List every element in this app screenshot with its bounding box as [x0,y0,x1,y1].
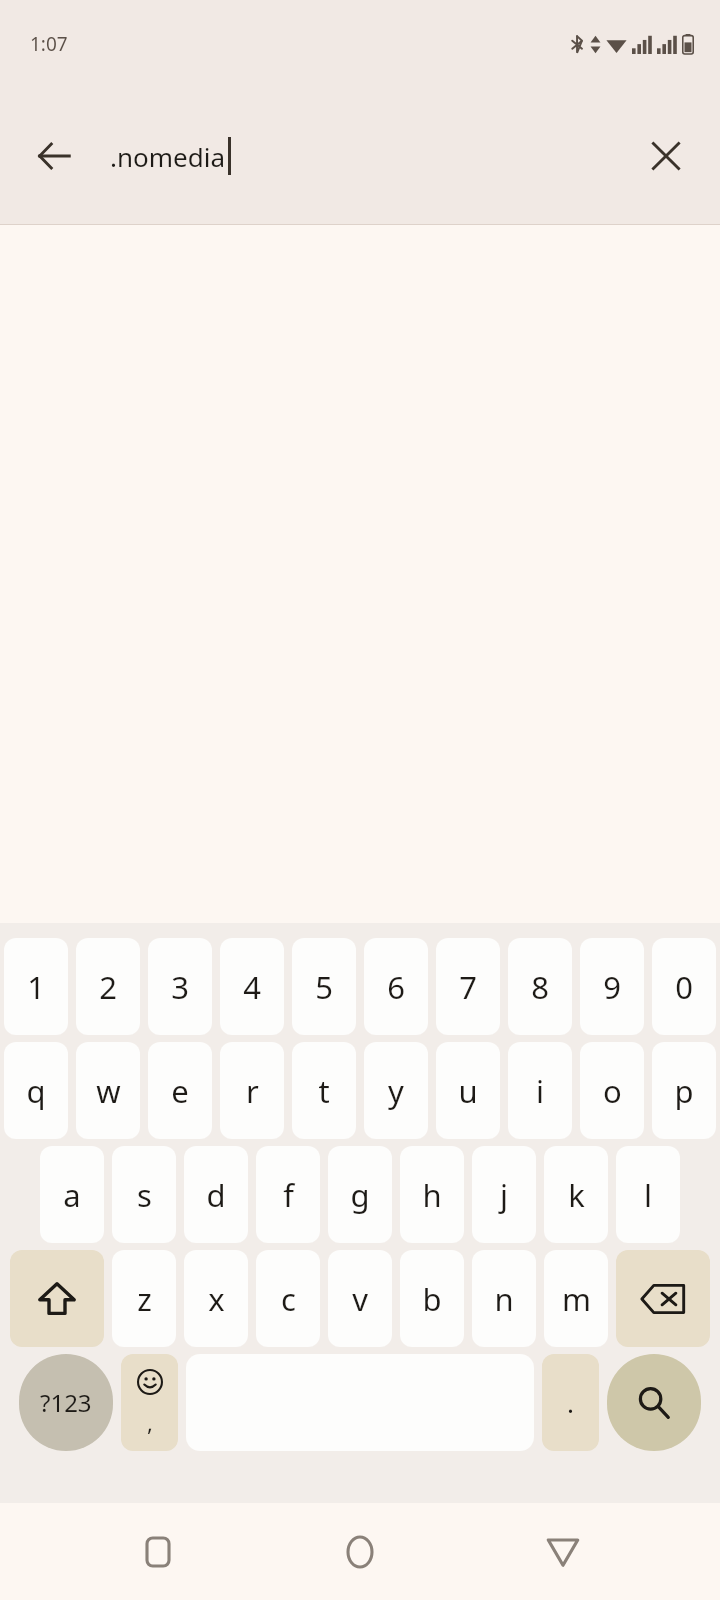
button[interactable]: m [544,1250,608,1347]
staticText: 9 [603,966,621,1008]
button[interactable]: 8 [508,938,572,1035]
staticText: x [208,1278,225,1320]
button[interactable]: y [364,1042,428,1139]
button[interactable]: z [112,1250,176,1347]
button[interactable]: 2 [76,938,140,1035]
staticText: l [644,1174,652,1216]
staticText: e [171,1070,189,1112]
staticText: r [246,1070,259,1112]
staticText: u [458,1070,478,1112]
button[interactable]: ?123 [19,1354,113,1451]
button[interactable]: 5 [292,938,356,1035]
staticText: d [206,1174,226,1216]
button[interactable]: 1 [4,938,68,1035]
button[interactable]: Back [518,1507,608,1597]
button[interactable]: Backspace [616,1250,710,1347]
staticText: v [352,1278,368,1320]
button[interactable]: f [256,1146,320,1243]
button[interactable]: Home [315,1507,405,1597]
button[interactable]: 9 [580,938,644,1035]
staticText: k [568,1174,585,1216]
staticText: 1 [27,966,45,1008]
staticText: , [147,1407,153,1437]
button[interactable]: 7 [436,938,500,1035]
staticText: h [422,1174,442,1216]
button[interactable]: l [616,1146,680,1243]
button[interactable]: j [472,1146,536,1243]
staticText: q [26,1070,46,1112]
button[interactable]: 0 [652,938,716,1035]
button[interactable]: b [400,1250,464,1347]
staticText: y [388,1070,404,1112]
staticText: w [96,1070,121,1112]
staticText: 7 [459,966,477,1008]
staticText: t [318,1070,330,1112]
button[interactable]: . [542,1354,599,1451]
button[interactable]: Recents [113,1507,203,1597]
staticText: ?123 [40,1386,92,1419]
staticText: b [422,1278,442,1320]
staticText: s [137,1174,152,1216]
button[interactable]: k [544,1146,608,1243]
staticText: .nomedia [110,139,226,174]
button[interactable]: Shift [10,1250,104,1347]
button[interactable]: 4 [220,938,284,1035]
button[interactable]: Clear [626,116,706,196]
button[interactable]: 3 [148,938,212,1035]
staticText: 8 [531,966,549,1008]
staticText: a [63,1174,81,1216]
staticText: 5 [315,966,333,1008]
staticText: i [536,1070,544,1112]
button[interactable]: g [328,1146,392,1243]
staticText: j [500,1174,508,1216]
staticText: 1:07 [30,31,68,57]
staticText: 3 [171,966,189,1008]
staticText: c [281,1278,296,1320]
button[interactable]: v [328,1250,392,1347]
staticText: o [603,1070,622,1112]
button[interactable]: q [4,1042,68,1139]
staticText: 0 [675,966,693,1008]
button[interactable]: n [472,1250,536,1347]
button[interactable]: Search [607,1354,701,1451]
button[interactable]: u [436,1042,500,1139]
button[interactable]: t [292,1042,356,1139]
staticText: p [674,1070,694,1112]
button[interactable]: r [220,1042,284,1139]
staticText: g [350,1174,370,1216]
button[interactable]: Back [14,116,94,196]
button[interactable]: x [184,1250,248,1347]
staticText: m [562,1278,591,1320]
staticText: 2 [99,966,117,1008]
staticText: 4 [243,966,261,1008]
button[interactable]: Emoji [121,1354,178,1451]
staticText: 6 [387,966,405,1008]
button[interactable]: 6 [364,938,428,1035]
button[interactable]: e [148,1042,212,1139]
button[interactable]: a [40,1146,104,1243]
button[interactable]: i [508,1042,572,1139]
button[interactable]: w [76,1042,140,1139]
staticText: z [137,1278,152,1320]
staticText: n [494,1278,514,1320]
staticText: . [567,1385,574,1420]
button[interactable]: s [112,1146,176,1243]
staticText: f [283,1174,294,1216]
button[interactable]: o [580,1042,644,1139]
button[interactable]: c [256,1250,320,1347]
button[interactable]: h [400,1146,464,1243]
button[interactable]: p [652,1042,716,1139]
button[interactable]: d [184,1146,248,1243]
